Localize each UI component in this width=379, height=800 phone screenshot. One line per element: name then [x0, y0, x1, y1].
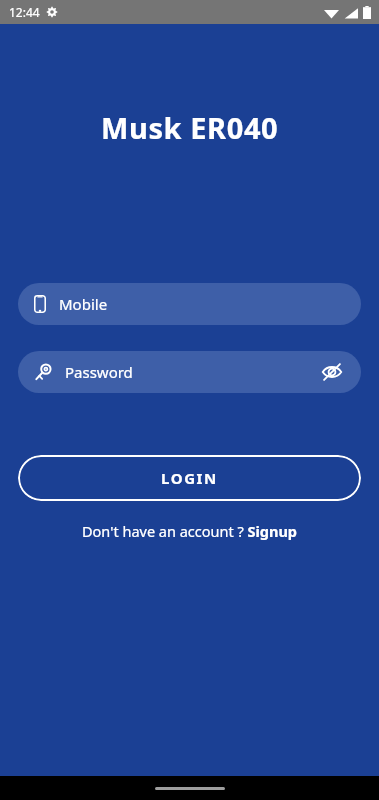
button[interactable]: Toggle password visibility: [319, 359, 345, 385]
staticText: LOGIN: [161, 468, 218, 488]
staticText: Don't have an account ? Signup: [82, 521, 298, 541]
button[interactable]: LOGIN: [18, 455, 361, 501]
staticText: Mobile: [59, 294, 108, 314]
button[interactable]: Password: [18, 351, 361, 393]
button[interactable]: Mobile: [18, 283, 361, 325]
staticText: Musk ER040: [101, 108, 279, 147]
staticText: Password: [65, 362, 133, 382]
staticText: 12:44: [9, 4, 40, 20]
button[interactable]: Don't have an account ? Signup: [78, 519, 302, 543]
